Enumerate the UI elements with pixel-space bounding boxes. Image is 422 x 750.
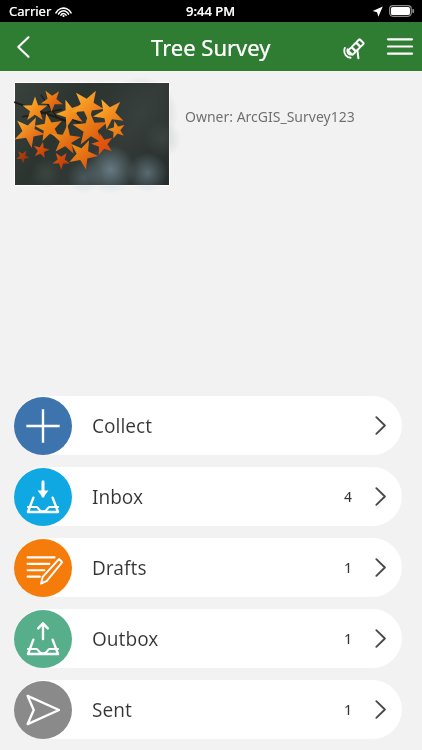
- staticText: Sent: [92, 697, 132, 723]
- staticText: Owner: ArcGIS_Survey123: [185, 107, 355, 126]
- staticText: Carrier: [9, 2, 52, 20]
- staticText: Collect: [92, 413, 153, 439]
- staticText: 4: [344, 487, 353, 506]
- staticText: 1: [344, 629, 353, 648]
- staticText: Inbox: [92, 484, 144, 510]
- button[interactable]: Drafts: [14, 538, 402, 597]
- staticText: Tree Survey: [151, 32, 271, 62]
- button[interactable]: Back: [0, 22, 46, 71]
- staticText: 1: [344, 700, 353, 719]
- button[interactable]: Sent: [14, 680, 402, 739]
- button[interactable]: Collect: [14, 396, 402, 455]
- button[interactable]: Inbox: [14, 467, 402, 526]
- staticText: 9:44 PM: [186, 2, 236, 20]
- button[interactable]: Menu: [378, 22, 422, 71]
- staticText: 1: [344, 558, 353, 577]
- staticText: Outbox: [92, 626, 159, 652]
- button[interactable]: GPS status: [334, 22, 378, 71]
- staticText: Drafts: [92, 555, 147, 581]
- button[interactable]: Outbox: [14, 609, 402, 668]
